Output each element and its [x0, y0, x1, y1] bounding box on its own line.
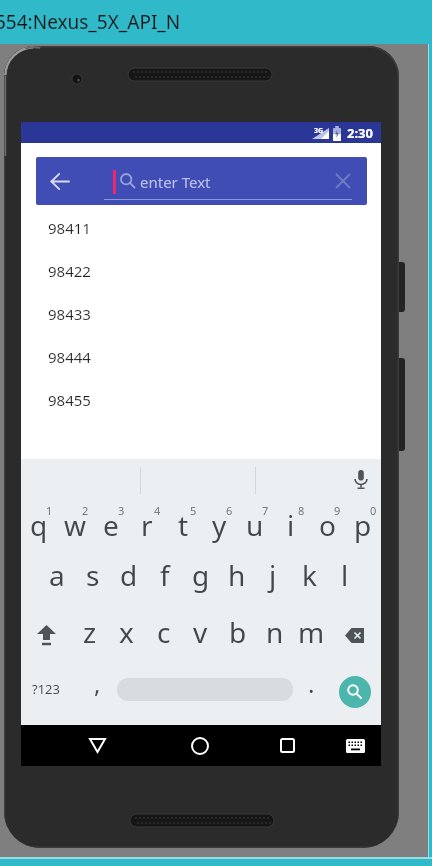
staticText: s: [86, 556, 100, 594]
staticText: b: [229, 613, 247, 651]
button[interactable]: [36, 157, 84, 205]
button[interactable]: [337, 725, 373, 766]
button[interactable]: 98422: [48, 249, 399, 292]
button[interactable]: x: [108, 608, 145, 662]
button[interactable]: [180, 725, 220, 766]
button[interactable]: l: [327, 554, 363, 608]
staticText: 3G: [314, 126, 324, 136]
button[interactable]: [341, 460, 381, 500]
staticText: 0: [370, 503, 377, 518]
button[interactable]: v: [182, 608, 219, 662]
button[interactable]: f: [147, 554, 183, 608]
button[interactable]: 98444: [48, 335, 399, 378]
button[interactable]: 98411: [48, 206, 399, 249]
staticText: d: [120, 556, 138, 594]
button[interactable]: m: [293, 608, 330, 662]
button[interactable]: 554:Nexus_5X_API_N: [0, 0, 432, 44]
staticText: j: [269, 556, 277, 594]
button[interactable]: b: [219, 608, 256, 662]
staticText: 5: [190, 503, 197, 518]
button[interactable]: e: [93, 500, 129, 554]
button[interactable]: z: [71, 608, 108, 662]
staticText: 98433: [48, 304, 91, 324]
button[interactable]: [21, 608, 71, 662]
staticText: e: [103, 506, 119, 544]
button[interactable]: 98433: [48, 292, 399, 335]
staticText: i: [287, 506, 295, 544]
button[interactable]: c: [145, 608, 182, 662]
button[interactable]: p: [345, 500, 381, 554]
staticText: p: [354, 506, 372, 544]
button[interactable]: [267, 725, 307, 766]
button[interactable]: ,: [82, 662, 112, 716]
staticText: f: [160, 556, 170, 594]
staticText: 554:Nexus_5X_API_N: [0, 9, 181, 35]
staticText: o: [319, 506, 336, 544]
button[interactable]: g: [183, 554, 219, 608]
staticText: 3: [118, 503, 125, 518]
staticText: 7: [262, 503, 269, 518]
button[interactable]: u: [237, 500, 273, 554]
staticText: 98444: [48, 347, 91, 367]
staticText: h: [228, 556, 246, 594]
button[interactable]: [330, 608, 381, 662]
button[interactable]: [319, 157, 367, 205]
staticText: 8: [298, 503, 305, 518]
staticText: w: [64, 506, 87, 544]
button[interactable]: t: [165, 500, 201, 554]
staticText: ,: [94, 667, 101, 700]
staticText: 98422: [48, 261, 91, 281]
button[interactable]: o: [309, 500, 345, 554]
button[interactable]: y: [201, 500, 237, 554]
button[interactable]: n: [256, 608, 293, 662]
staticText: 2:30: [347, 124, 373, 142]
button[interactable]: s: [75, 554, 111, 608]
staticText: c: [157, 613, 171, 651]
button[interactable]: q: [21, 500, 57, 554]
staticText: ?123: [32, 680, 60, 698]
button[interactable]: [339, 676, 371, 708]
staticText: enter Text: [140, 172, 211, 192]
staticText: t: [178, 506, 189, 544]
staticText: 2: [82, 503, 89, 518]
button[interactable]: k: [291, 554, 327, 608]
staticText: v: [193, 613, 208, 651]
button[interactable]: j: [255, 554, 291, 608]
staticText: n: [266, 613, 284, 651]
button[interactable]: a: [39, 554, 75, 608]
staticText: z: [83, 613, 97, 651]
staticText: 98455: [48, 390, 91, 410]
staticText: m: [298, 613, 325, 651]
staticText: .: [308, 667, 315, 700]
button[interactable]: w: [57, 500, 93, 554]
button[interactable]: ?123: [24, 662, 68, 716]
staticText: l: [341, 556, 349, 594]
button[interactable]: .: [297, 662, 325, 716]
staticText: q: [30, 506, 48, 544]
button[interactable]: r: [129, 500, 165, 554]
button[interactable]: [77, 725, 117, 766]
button[interactable]: 98455: [48, 378, 399, 421]
button[interactable]: d: [111, 554, 147, 608]
staticText: x: [119, 613, 134, 651]
staticText: a: [49, 556, 65, 594]
staticText: 98411: [48, 218, 91, 238]
staticText: u: [246, 506, 264, 544]
staticText: 1: [46, 503, 53, 518]
staticText: g: [192, 556, 210, 594]
staticText: k: [302, 556, 317, 594]
button[interactable]: i: [273, 500, 309, 554]
staticText: 4: [154, 503, 161, 518]
staticText: y: [212, 506, 227, 544]
staticText: 9: [334, 503, 341, 518]
staticText: r: [141, 506, 153, 544]
staticText: 6: [226, 503, 233, 518]
button[interactable]: h: [219, 554, 255, 608]
button[interactable]: [117, 678, 293, 701]
